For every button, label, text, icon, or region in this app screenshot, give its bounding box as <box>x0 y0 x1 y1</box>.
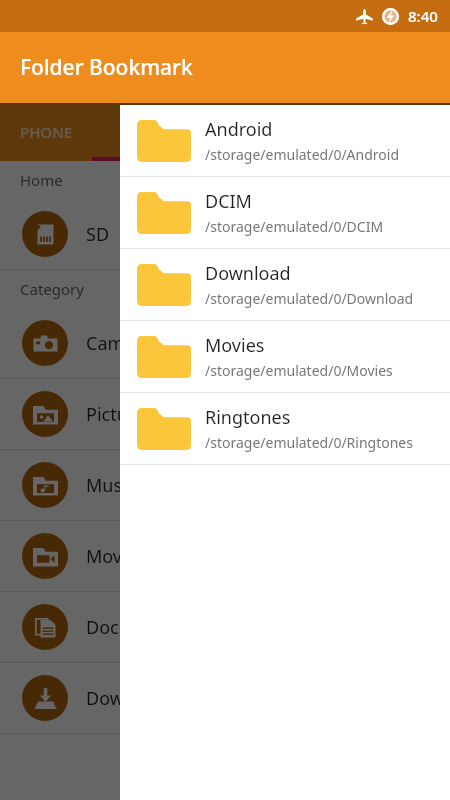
button[interactable]: Download <box>120 249 450 320</box>
button[interactable]: Picture <box>0 379 450 449</box>
other: Charging <box>382 8 399 25</box>
staticText: Download <box>86 686 172 711</box>
staticText: /storage/emulated/0/Download <box>205 289 414 308</box>
staticText: Camera <box>86 331 152 356</box>
staticText: Download <box>205 261 291 286</box>
button[interactable]: SD <box>0 199 450 269</box>
staticText: /storage/emulated/0/Ringtones <box>205 433 413 452</box>
other: Airplane mode <box>356 8 373 25</box>
staticText: Music <box>86 473 136 498</box>
staticText: SD <box>86 222 110 247</box>
staticText: /storage/emulated/0/Android <box>205 145 399 164</box>
button[interactable]: Ringtones <box>120 393 450 464</box>
staticText: Movies <box>86 544 146 569</box>
staticText: Home <box>20 170 63 190</box>
button[interactable]: Camera <box>0 308 450 378</box>
button[interactable]: Movies <box>120 321 450 392</box>
staticText: Picture <box>86 402 146 427</box>
staticText: SD <box>128 122 148 142</box>
staticText: Ringtones <box>205 405 291 430</box>
button[interactable]: Music <box>0 450 450 520</box>
button[interactable]: Movies <box>0 521 450 591</box>
button[interactable]: Download <box>0 663 450 733</box>
staticText: 8:40 <box>408 6 438 26</box>
staticText: PHONE <box>20 122 73 142</box>
button[interactable]: Document <box>0 592 450 662</box>
staticText: DCIM <box>205 189 252 214</box>
staticText: /storage/emulated/0/Movies <box>205 361 393 380</box>
staticText: Folder Bookmark <box>20 53 193 82</box>
button[interactable]: SD <box>92 103 184 161</box>
staticText: Movies <box>205 333 265 358</box>
staticText: Android <box>205 117 273 142</box>
staticText: Category <box>20 279 84 299</box>
button[interactable]: PHONE <box>0 103 92 161</box>
button[interactable]: Android <box>120 105 450 176</box>
button[interactable]: DCIM <box>120 177 450 248</box>
staticText: /storage/emulated/0/DCIM <box>205 217 384 236</box>
staticText: Document <box>86 615 175 640</box>
